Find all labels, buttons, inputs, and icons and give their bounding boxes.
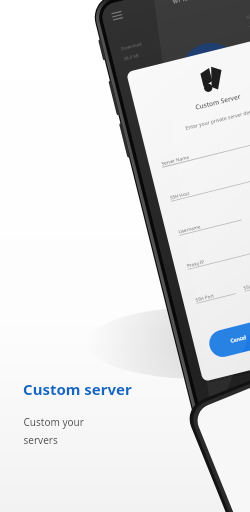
button[interactable]: Custom server feature preview [0,0,250,512]
